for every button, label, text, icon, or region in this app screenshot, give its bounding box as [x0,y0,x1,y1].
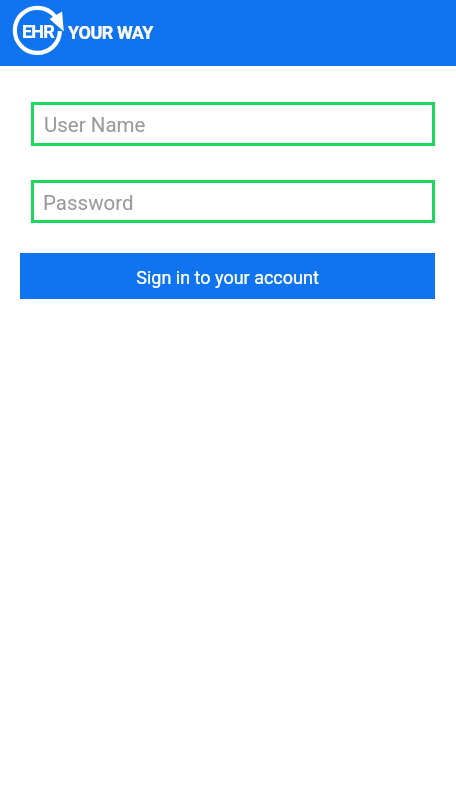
other: EHR Your Way logo [11,4,66,58]
staticText: Password [43,191,134,215]
staticText: User Name [44,113,146,137]
button[interactable]: Sign in to your account [20,253,435,299]
staticText: Sign in to your account [136,267,319,288]
staticText: YOUR WAY [68,22,154,43]
button[interactable]: Password [31,180,435,223]
button[interactable]: User Name [31,102,435,146]
staticText: EHR [22,21,54,42]
